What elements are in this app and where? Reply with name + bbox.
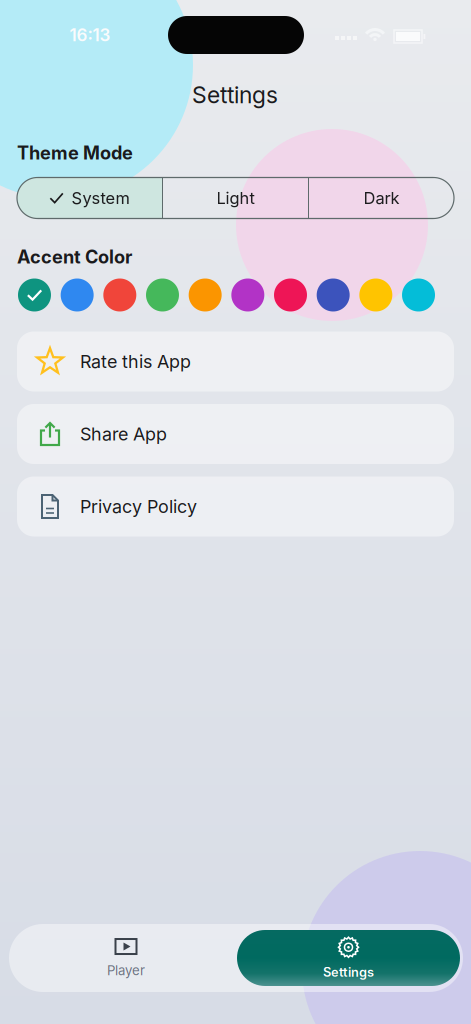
- button[interactable]: Accent color 9: [359, 278, 392, 311]
- staticText: 16:13: [69, 25, 110, 45]
- button[interactable]: Accent color 3: [103, 278, 136, 311]
- staticText: Rate this App: [80, 351, 191, 372]
- staticText: Privacy Policy: [80, 496, 197, 517]
- staticText: System: [71, 188, 129, 208]
- button[interactable]: Dark: [309, 177, 454, 218]
- button[interactable]: Accent color 2: [61, 278, 94, 311]
- button[interactable]: Rate this App: [17, 331, 454, 391]
- button[interactable]: Privacy Policy: [17, 476, 454, 536]
- button[interactable]: Player: [15, 930, 237, 986]
- staticText: Settings: [323, 964, 374, 980]
- staticText: Accent Color: [17, 246, 132, 268]
- staticText: Share App: [80, 423, 167, 445]
- button[interactable]: Accent color 1: [18, 278, 51, 311]
- staticText: Theme Mode: [17, 142, 133, 164]
- button[interactable]: Settings: [237, 930, 460, 986]
- button[interactable]: Accent color 7: [274, 278, 307, 311]
- button[interactable]: Light: [163, 177, 308, 218]
- staticText: Light: [216, 188, 254, 208]
- button[interactable]: Accent color 10: [402, 278, 435, 311]
- button[interactable]: Share App: [17, 404, 454, 464]
- staticText: Dark: [363, 188, 399, 208]
- button[interactable]: Accent color 8: [317, 278, 350, 311]
- button[interactable]: Accent color 6: [231, 278, 264, 311]
- button[interactable]: Accent color 5: [189, 278, 222, 311]
- button[interactable]: Accent color 4: [146, 278, 179, 311]
- staticText: Settings: [192, 81, 278, 109]
- button[interactable]: System: [17, 177, 162, 218]
- staticText: Player: [107, 962, 145, 978]
